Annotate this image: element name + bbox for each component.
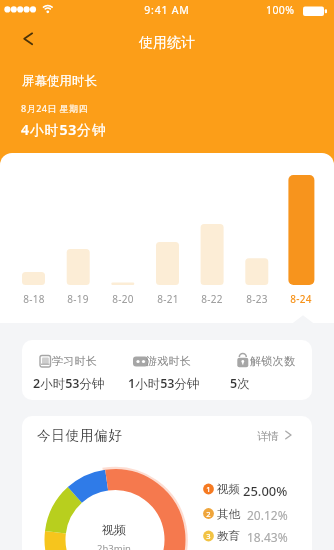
button[interactable] [200, 527, 300, 546]
staticText: 屏幕使用时长 [22, 73, 97, 89]
staticText: 8-20 [101, 292, 145, 306]
staticText: 8月24日 星期四 [21, 102, 89, 114]
staticText: 8-18 [12, 292, 56, 306]
staticText: 1 [204, 484, 213, 494]
staticText: 视频 [64, 522, 164, 537]
button[interactable] [200, 505, 300, 524]
button[interactable] [18, 30, 44, 56]
staticText: 100% [266, 3, 295, 17]
staticText: 2h3min [64, 542, 164, 550]
button[interactable] [25, 342, 119, 398]
staticText: 3 [204, 531, 213, 541]
staticText: 学习时长 [52, 354, 98, 368]
staticText: 教育 [217, 529, 240, 543]
staticText: 8-22 [190, 292, 234, 306]
staticText: 8-19 [56, 292, 100, 306]
staticText: 9:41 AM [0, 3, 334, 17]
staticText: 今日使用偏好 [37, 427, 123, 444]
staticText: 解锁次数 [250, 354, 296, 368]
staticText: 2小时53分钟 [33, 375, 105, 392]
staticText: 8-21 [146, 292, 190, 306]
staticText: 其他 [217, 507, 240, 521]
button[interactable] [120, 342, 214, 398]
staticText: 详情 [257, 429, 279, 443]
staticText: 1小时53分钟 [128, 375, 200, 392]
staticText: 2 [204, 509, 213, 519]
staticText: 使用统计 [0, 34, 334, 52]
staticText: 游戏时长 [146, 354, 192, 368]
staticText: 4小时53分钟 [21, 120, 107, 139]
button[interactable] [250, 424, 298, 446]
staticText: 20.12% [247, 507, 288, 523]
staticText: 18.43% [247, 529, 288, 545]
button[interactable] [215, 342, 309, 398]
staticText: 5次 [230, 375, 250, 392]
staticText: 25.00% [243, 482, 288, 500]
staticText: 视频 [217, 482, 240, 496]
staticText: 8-23 [235, 292, 279, 306]
button[interactable] [200, 480, 300, 499]
staticText: 8-24 [279, 292, 323, 306]
